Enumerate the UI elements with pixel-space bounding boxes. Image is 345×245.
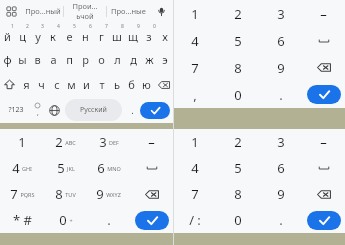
button[interactable]: 5: [216, 27, 259, 54]
button[interactable]: о: [93, 47, 109, 72]
button[interactable]: ф: [0, 47, 15, 72]
button[interactable]: я: [19, 72, 34, 97]
button[interactable]: Enter: [307, 211, 341, 230]
staticText: 1: [191, 133, 199, 151]
staticText: 5: [57, 159, 65, 177]
button[interactable]: ?123: [3, 99, 29, 121]
button[interactable]: 2: [44, 129, 87, 155]
button[interactable]: Change language: [45, 99, 63, 121]
button[interactable]: Voice input: [149, 0, 173, 22]
staticText: н: [82, 29, 89, 44]
staticText: ж: [145, 52, 154, 67]
button[interactable]: а: [45, 47, 61, 72]
button[interactable]: 9: [125, 22, 141, 47]
button[interactable]: Про…ные: [107, 0, 149, 22]
button[interactable]: 0: [216, 207, 259, 233]
button[interactable]: Backspace: [154, 72, 173, 97]
button[interactable]: э: [157, 47, 173, 72]
button[interactable]: 4: [45, 22, 61, 47]
button[interactable]: –: [130, 129, 173, 155]
button[interactable]: .: [124, 99, 140, 121]
button[interactable]: л: [109, 47, 125, 72]
button[interactable]: 1: [174, 0, 216, 27]
button[interactable]: 8: [216, 54, 259, 81]
button[interactable]: Emoji: [29, 99, 45, 121]
button[interactable]: –: [302, 129, 345, 155]
button[interactable]: * #: [0, 207, 44, 233]
button[interactable]: Русский: [65, 99, 122, 121]
button[interactable]: ь: [109, 72, 124, 97]
button[interactable]: 5: [216, 155, 259, 181]
button[interactable]: 1: [174, 129, 216, 155]
button[interactable]: х: [157, 22, 173, 47]
button[interactable]: Enter: [140, 102, 170, 119]
button[interactable]: 5: [61, 22, 77, 47]
button[interactable]: р: [77, 47, 93, 72]
button[interactable]: 0: [44, 207, 87, 233]
button[interactable]: Space: [130, 155, 173, 181]
button[interactable]: 9: [87, 181, 130, 207]
button[interactable]: Backspace: [130, 181, 173, 207]
button[interactable]: 4: [174, 155, 216, 181]
button[interactable]: б: [124, 72, 139, 97]
button[interactable]: 3: [87, 129, 130, 155]
button[interactable]: 6: [77, 22, 93, 47]
button[interactable]: Space: [302, 155, 345, 181]
button[interactable]: 5: [44, 155, 87, 181]
button[interactable]: .: [87, 207, 130, 233]
button[interactable]: 0: [141, 22, 157, 47]
button[interactable]: 7: [0, 181, 44, 207]
button[interactable]: 0: [216, 81, 259, 108]
button[interactable]: Shift: [0, 72, 19, 97]
button[interactable]: 2: [216, 0, 259, 27]
button[interactable]: ж: [141, 47, 157, 72]
button[interactable]: 1: [0, 22, 15, 47]
button[interactable]: п: [61, 47, 77, 72]
button[interactable]: 3: [259, 0, 302, 27]
staticText: 7: [191, 185, 199, 203]
button[interactable]: 3: [30, 22, 45, 47]
button[interactable]: 7: [174, 54, 216, 81]
button[interactable]: 8: [216, 181, 259, 207]
button[interactable]: Toolbar: [0, 0, 22, 22]
button[interactable]: .: [259, 207, 302, 233]
button[interactable]: Backspace: [302, 181, 345, 207]
button[interactable]: 2: [216, 129, 259, 155]
button[interactable]: ,: [174, 81, 216, 108]
staticText: г: [99, 29, 104, 44]
button[interactable]: 7: [93, 22, 109, 47]
button[interactable]: Enter: [135, 211, 169, 230]
button[interactable]: 3: [259, 129, 302, 155]
button[interactable]: ы: [15, 47, 30, 72]
button[interactable]: 2: [15, 22, 30, 47]
button[interactable]: 6: [259, 27, 302, 54]
button[interactable]: Прои…ьчой: [64, 0, 106, 22]
button[interactable]: –: [302, 0, 345, 27]
button[interactable]: м: [64, 72, 79, 97]
button[interactable]: 9: [259, 54, 302, 81]
button[interactable]: 6: [259, 155, 302, 181]
button[interactable]: т: [94, 72, 109, 97]
button[interactable]: 8: [109, 22, 125, 47]
button[interactable]: Enter: [307, 85, 341, 104]
button[interactable]: Backspace: [302, 54, 345, 81]
button[interactable]: 7: [174, 181, 216, 207]
button[interactable]: 6: [87, 155, 130, 181]
button[interactable]: и: [79, 72, 94, 97]
button[interactable]: с: [49, 72, 64, 97]
button[interactable]: ч: [34, 72, 49, 97]
button[interactable]: 9: [259, 181, 302, 207]
button[interactable]: д: [125, 47, 141, 72]
button[interactable]: в: [30, 47, 45, 72]
button[interactable]: .: [259, 81, 302, 108]
button[interactable]: 1: [0, 129, 44, 155]
button[interactable]: / :: [174, 207, 216, 233]
button[interactable]: Про…ный: [22, 0, 63, 22]
staticText: ь: [114, 77, 120, 92]
button[interactable]: 4: [174, 27, 216, 54]
button[interactable]: Space: [302, 27, 345, 54]
button[interactable]: 8: [44, 181, 87, 207]
button[interactable]: ю: [139, 72, 154, 97]
button[interactable]: 4: [0, 155, 44, 181]
staticText: TUV: [65, 191, 76, 198]
